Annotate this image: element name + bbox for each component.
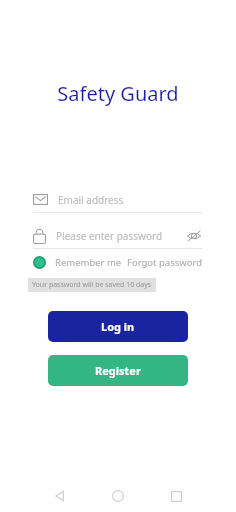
staticText: Forgot password (127, 256, 203, 269)
staticText: Your password will be saved 10 days (32, 280, 152, 290)
button[interactable]: Forgot password (127, 256, 203, 269)
button[interactable]: Remember me (33, 256, 122, 269)
button[interactable]: Back (31, 480, 89, 512)
staticText: Log in (101, 319, 135, 334)
button[interactable]: Log in (48, 311, 188, 342)
staticText: Please enter password (56, 229, 185, 243)
button[interactable]: Recent apps (147, 480, 205, 512)
staticText: Remember me (55, 256, 122, 269)
staticText: Email address (58, 193, 124, 207)
button[interactable]: Show password (185, 227, 203, 245)
button[interactable]: Home (89, 480, 147, 512)
staticText: Register (95, 363, 141, 378)
button[interactable]: Please enter password (33, 225, 203, 247)
button[interactable]: Email address (33, 188, 203, 211)
staticText: Safety Guard (57, 80, 179, 107)
button[interactable]: Register (48, 355, 188, 386)
